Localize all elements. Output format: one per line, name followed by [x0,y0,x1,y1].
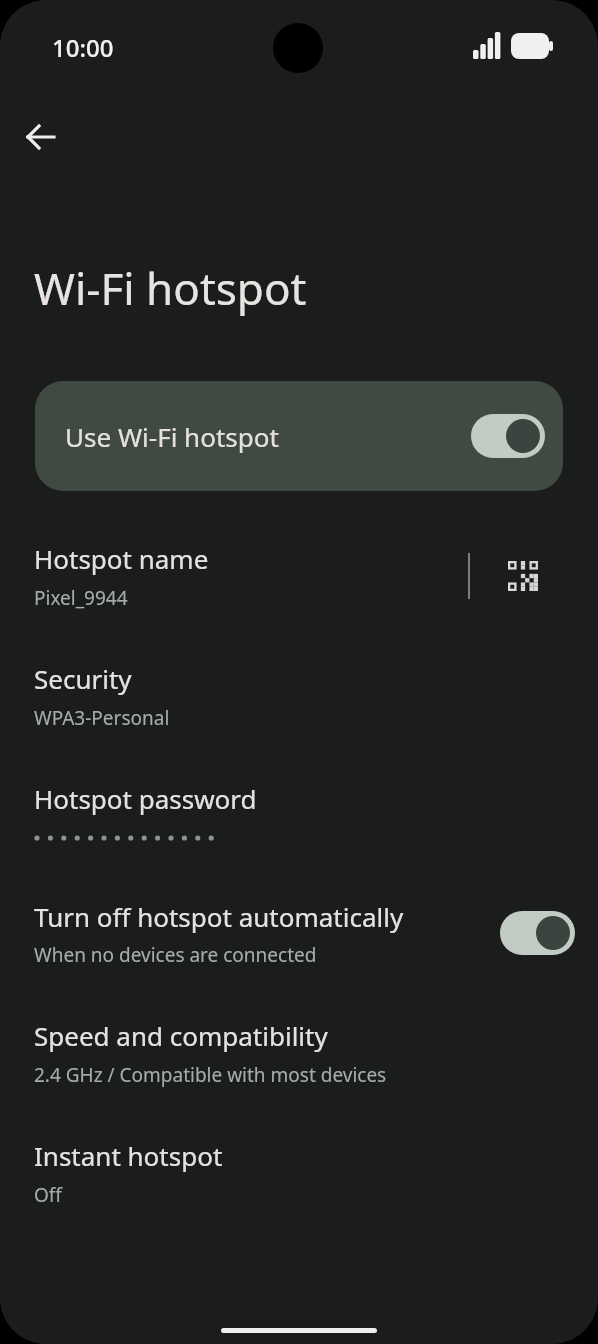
staticText: Turn off hotspot automatically [34,899,404,934]
button[interactable] [0,531,598,621]
button[interactable] [0,651,598,741]
staticText: Speed and compatibility [34,1018,328,1053]
staticText: Use Wi-Fi hotspot [65,419,279,454]
staticText: 10:00 [52,31,114,64]
button[interactable]: Use Wi-Fi hotspot [35,381,563,491]
button[interactable] [0,889,598,978]
button[interactable] [0,1128,598,1218]
staticText: Off [34,1182,62,1208]
staticText: When no devices are connected [34,942,317,968]
staticText: Wi-Fi hotspot [34,258,307,318]
button[interactable] [0,1008,598,1098]
button[interactable]: Share hotspot QR code [494,547,552,605]
staticText: Security [34,661,132,696]
staticText: WPA3-Personal [34,705,170,731]
button[interactable] [500,911,575,955]
staticText: 2.4 GHz / Compatible with most devices [34,1062,387,1088]
staticText: Hotspot password [34,781,257,816]
staticText: Pixel_9944 [34,585,128,611]
staticText: Instant hotspot [34,1138,223,1173]
staticText: Hotspot name [34,541,209,576]
button[interactable] [0,771,598,835]
button[interactable]: Back [17,113,65,161]
